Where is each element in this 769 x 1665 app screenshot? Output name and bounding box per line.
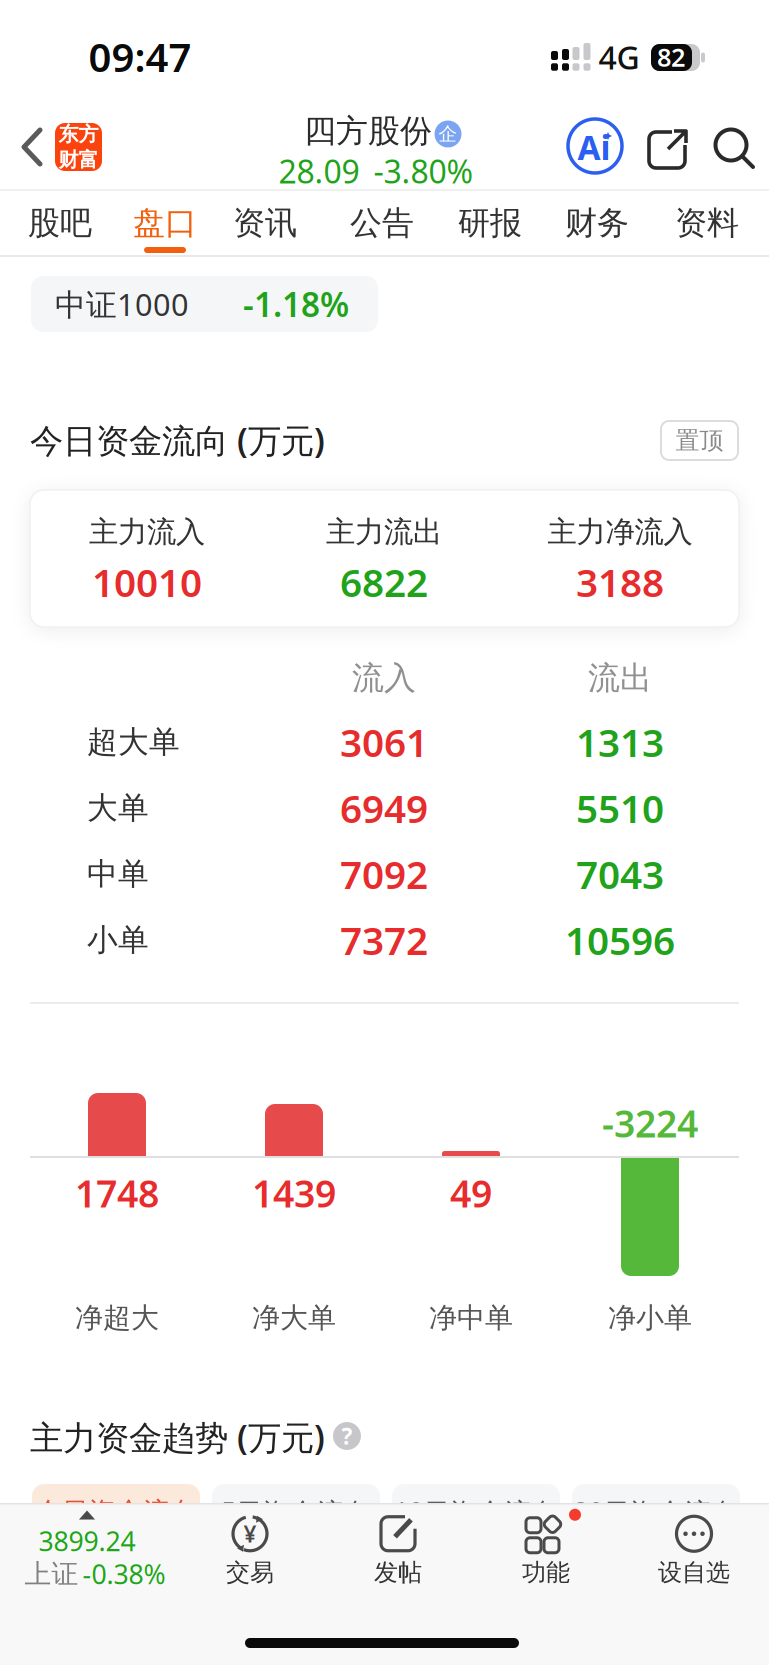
staticText: 1439 [252, 1168, 336, 1218]
staticText: 四方股份 [304, 111, 432, 151]
staticText: 资讯 [233, 203, 297, 243]
staticText: 3899.24 [38, 1523, 135, 1559]
staticText: 1313 [576, 716, 664, 768]
staticText: 盘口 [133, 203, 197, 243]
staticText: 超大单 [87, 723, 180, 761]
button[interactable]: 30日资金流向 [572, 1484, 740, 1540]
staticText: 小单 [87, 921, 149, 959]
button[interactable]: Back [22, 126, 44, 168]
button[interactable]: 资料 [675, 203, 739, 243]
staticText: ¥ [243, 1519, 256, 1549]
button[interactable]: 盘口 [133, 203, 197, 243]
button[interactable]: 帮助 [333, 1421, 361, 1451]
staticText: 净大单 [252, 1301, 336, 1335]
button[interactable]: Search [713, 127, 755, 169]
button[interactable]: 研报 [458, 203, 522, 243]
staticText: 上证 [24, 1558, 78, 1590]
button[interactable]: 10日资金流向 [392, 1484, 560, 1540]
button[interactable]: 功能 [522, 1515, 570, 1587]
staticText: 今日资金流向 [35, 1496, 197, 1528]
staticText: 财务 [565, 203, 629, 243]
staticText: 3061 [340, 716, 428, 768]
staticText: 4G [598, 36, 639, 78]
button[interactable]: 置顶 [661, 421, 738, 460]
staticText: 49 [450, 1168, 492, 1218]
staticText: 中单 [87, 855, 149, 893]
staticText: 大单 [87, 789, 149, 827]
staticText: 净超大 [75, 1301, 159, 1335]
staticText: 7372 [340, 914, 428, 966]
staticText: 主力流出 [326, 514, 442, 550]
button[interactable]: 财务 [565, 203, 629, 243]
button[interactable]: 股吧 [28, 203, 92, 243]
staticText: 公告 [350, 203, 414, 243]
button[interactable]: 3899.24 [3, 1504, 173, 1599]
staticText: -1.18% [243, 282, 349, 326]
staticText: 置顶 [675, 426, 723, 455]
staticText: Ai [577, 125, 610, 169]
button[interactable]: Share [646, 125, 690, 171]
staticText: 主力资金趋势 (万元) [30, 1415, 325, 1459]
button[interactable]: 发帖 [374, 1515, 422, 1587]
staticText: 09:47 [88, 30, 191, 83]
staticText: 设自选 [658, 1558, 730, 1587]
button[interactable]: 设自选 [658, 1515, 730, 1587]
staticText: 净小单 [608, 1301, 692, 1335]
staticText: 东方 [58, 122, 98, 146]
button[interactable]: Ai assistant [568, 119, 622, 173]
staticText: 流入 [352, 658, 416, 698]
staticText: 交易 [226, 1558, 274, 1587]
staticText: 3188 [576, 556, 664, 608]
staticText: 今日资金流向 (万元) [30, 418, 325, 462]
staticText: -3.80% [373, 150, 473, 192]
staticText: 5日资金流向 [221, 1494, 371, 1530]
staticText: 主力净流入 [547, 514, 692, 550]
button[interactable]: 5日资金流向 [212, 1484, 380, 1540]
button[interactable]: 中证1000 [31, 276, 378, 332]
staticText: 功能 [522, 1558, 570, 1587]
button[interactable]: ¥ [226, 1515, 274, 1587]
staticText: 股吧 [28, 203, 92, 243]
staticText: -3224 [602, 1098, 698, 1148]
staticText: 7043 [576, 848, 664, 900]
staticText: 发帖 [374, 1558, 422, 1587]
staticText: 企 [438, 122, 457, 145]
staticText: 中证1000 [55, 284, 189, 324]
button[interactable]: 公告 [350, 203, 414, 243]
staticText: 1748 [75, 1168, 159, 1218]
staticText: 82 [657, 40, 685, 74]
staticText: 资料 [675, 203, 739, 243]
staticText: 财富 [58, 147, 98, 172]
staticText: 10日资金流向 [393, 1494, 558, 1530]
staticText: 28.09 [278, 150, 359, 192]
staticText: 主力流入 [89, 514, 205, 550]
staticText: 7092 [340, 848, 428, 900]
button[interactable]: 东方财富 [55, 122, 102, 172]
staticText: 6949 [340, 782, 428, 834]
staticText: 10010 [92, 556, 202, 608]
staticText: ? [341, 1421, 352, 1451]
staticText: 流出 [588, 658, 652, 698]
staticText: 净中单 [429, 1301, 513, 1335]
staticText: 10596 [565, 914, 675, 966]
staticText: 研报 [458, 203, 522, 243]
staticText: 5510 [576, 782, 664, 834]
staticText: 6822 [340, 556, 428, 608]
staticText: 30日资金流向 [573, 1494, 738, 1530]
staticText: -0.38% [82, 1556, 165, 1592]
button[interactable]: 今日资金流向 [32, 1484, 200, 1540]
button[interactable]: 资讯 [233, 203, 297, 243]
